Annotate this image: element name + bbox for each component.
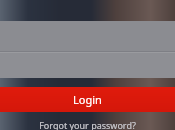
staticText: Login — [73, 92, 102, 107]
button[interactable]: Login — [0, 87, 175, 112]
button[interactable]: Forgot your password? — [0, 116, 175, 130]
staticText: Forgot your password? — [39, 119, 136, 130]
